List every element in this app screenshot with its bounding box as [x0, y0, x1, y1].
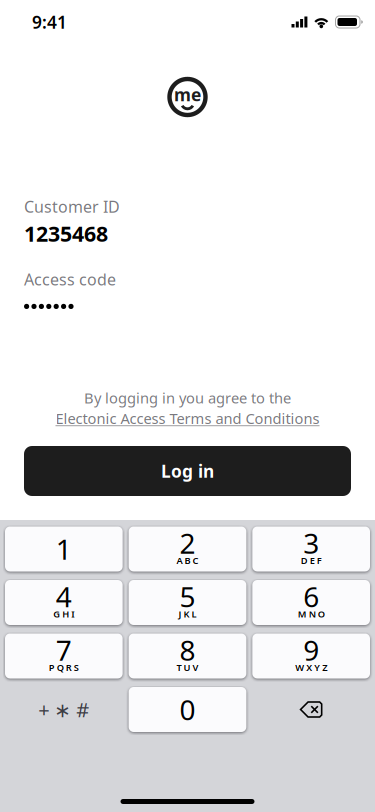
staticText: J K L [178, 608, 196, 620]
button[interactable]: Electonic Access Terms and Conditions [55, 408, 319, 428]
button[interactable]: 8 [129, 633, 246, 678]
button[interactable]: 2 [129, 526, 246, 571]
button[interactable]: 4 [5, 580, 123, 625]
staticText: + ∗ # [38, 696, 89, 723]
staticText: G H I [53, 608, 74, 620]
button[interactable]: Delete [252, 687, 370, 731]
button[interactable]: 3 [252, 526, 370, 571]
staticText: D E F [301, 554, 322, 567]
staticText: Log in [161, 459, 214, 482]
staticText: 7 [56, 631, 72, 669]
staticText: 0 [179, 691, 195, 728]
staticText: 6 [303, 578, 319, 615]
staticText: A B C [176, 554, 198, 567]
staticText: 9 [303, 631, 319, 669]
button[interactable]: 7 [5, 633, 123, 678]
staticText: 2 [179, 524, 195, 562]
button[interactable]: 5 [129, 580, 246, 625]
staticText: T U V [176, 661, 198, 674]
button[interactable]: 6 [252, 580, 370, 625]
staticText: 1235468 [24, 219, 108, 247]
staticText: 8 [179, 631, 195, 669]
staticText: Customer ID [24, 196, 120, 217]
button[interactable]: 0 [129, 687, 246, 732]
staticText: By logging in you agree to the [84, 388, 291, 407]
button[interactable]: 1 [5, 526, 123, 571]
staticText: me [174, 83, 201, 106]
staticText: 3 [303, 524, 319, 562]
staticText: 1 [56, 530, 72, 568]
staticText: M N O [298, 608, 325, 620]
staticText: P Q R S [49, 661, 79, 674]
staticText: W X Y Z [295, 661, 327, 674]
staticText: 4 [56, 578, 72, 615]
staticText: Electonic Access Terms and Conditions [55, 408, 319, 428]
staticText: Access code [24, 269, 116, 290]
button[interactable]: 9 [252, 633, 370, 678]
staticText: 5 [179, 578, 195, 615]
staticText: 9:41 [32, 10, 67, 33]
button[interactable]: Log in [24, 446, 351, 496]
button[interactable]: Symbols [5, 687, 123, 731]
